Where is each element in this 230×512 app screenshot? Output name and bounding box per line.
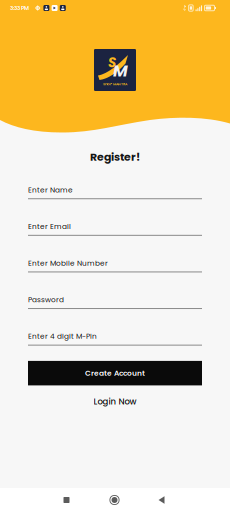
staticText: Create Account xyxy=(85,368,145,378)
staticText: S xyxy=(108,53,116,72)
staticText: Login Now xyxy=(93,395,136,407)
staticText: Enter Name xyxy=(28,185,73,195)
staticText: Enter Email xyxy=(28,221,71,232)
button[interactable]: Home xyxy=(94,488,134,512)
staticText: 3:33 PM xyxy=(10,4,29,12)
button[interactable]: Enter Email xyxy=(28,218,202,232)
button[interactable]: Enter Name xyxy=(28,181,202,195)
button[interactable]: Enter 4 digit M-Pin xyxy=(28,327,202,341)
staticText: Register! xyxy=(90,149,140,165)
button[interactable]: Create Account xyxy=(28,361,202,385)
button[interactable]: Password xyxy=(28,291,202,305)
staticText: Password xyxy=(28,295,64,305)
button[interactable]: Enter Mobile Number xyxy=(28,254,202,268)
button[interactable]: Recent apps xyxy=(46,488,86,512)
button[interactable]: Login Now xyxy=(28,395,202,407)
staticText: Enter Mobile Number xyxy=(28,258,108,268)
staticText: Enter 4 digit M-Pin xyxy=(28,331,97,341)
button[interactable]: Back xyxy=(141,488,181,512)
staticText: SHOP MANTRA xyxy=(103,82,127,86)
staticText: M xyxy=(113,60,128,82)
